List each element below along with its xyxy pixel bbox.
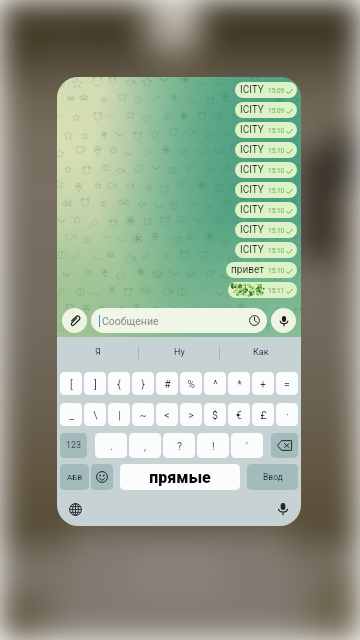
staticText: 15:10: [268, 247, 285, 255]
button[interactable]: Ввод: [247, 464, 298, 490]
staticText: [: [70, 378, 73, 390]
button[interactable]: ·: [276, 403, 298, 426]
staticText: \: [93, 409, 98, 421]
button[interactable]: ICITY: [235, 202, 297, 218]
staticText: привет: [231, 264, 264, 276]
button[interactable]: Change language: [57, 492, 93, 526]
staticText: ICITY: [240, 224, 264, 236]
button[interactable]: АБВ: [60, 464, 89, 490]
staticText: |: [118, 409, 121, 421]
button[interactable]: привет: [226, 262, 297, 278]
staticText: ICITY: [240, 204, 264, 216]
staticText: прямые: [150, 467, 212, 486]
staticText: ,: [144, 440, 147, 452]
staticText: ^: [213, 378, 218, 390]
staticText: =: [284, 378, 290, 390]
other: Backspace: [270, 433, 299, 458]
button[interactable]: ICITY: [235, 122, 297, 138]
other: Emoji: [90, 464, 114, 490]
staticText: ~: [139, 409, 147, 421]
staticText: прямые: [149, 467, 211, 486]
staticText: ICITY: [240, 164, 264, 176]
staticText: %: [187, 378, 195, 390]
button[interactable]: Как: [220, 337, 301, 368]
button[interactable]: 123: [60, 433, 87, 458]
staticText: 15:09: [268, 87, 285, 95]
staticText: ]: [94, 378, 97, 390]
staticText: $: [212, 409, 218, 421]
button[interactable]: >: [180, 403, 202, 426]
button[interactable]: Voice message: [271, 308, 296, 333]
button[interactable]: \: [84, 403, 106, 426]
button[interactable]: !: [197, 433, 229, 458]
staticText: прямые: [150, 468, 212, 487]
button[interactable]: [91, 464, 113, 490]
staticText: .: [110, 440, 113, 452]
staticText: ICITY: [240, 84, 264, 96]
staticText: Как: [253, 347, 269, 358]
button[interactable]: [: [60, 372, 82, 395]
button[interactable]: ?: [163, 433, 195, 458]
staticText: 15:10: [268, 127, 285, 135]
button[interactable]: .: [95, 433, 127, 458]
button[interactable]: €: [228, 403, 250, 426]
button[interactable]: <: [156, 403, 178, 426]
staticText: _: [69, 409, 74, 421]
staticText: Я: [95, 347, 101, 358]
staticText: 15:10: [268, 267, 285, 275]
button[interactable]: ICITY: [235, 242, 297, 258]
button[interactable]: ICITY: [235, 142, 297, 158]
button[interactable]: ICITY: [235, 222, 297, 238]
button[interactable]: ICITY: [235, 82, 297, 98]
staticText: £: [260, 409, 267, 421]
staticText: ICITY: [240, 144, 264, 156]
button[interactable]: _: [60, 403, 82, 426]
button[interactable]: Ну: [139, 337, 220, 368]
button[interactable]: ~: [132, 403, 154, 426]
staticText: *: [237, 378, 242, 390]
button[interactable]: ': [231, 433, 263, 458]
button[interactable]: [120, 464, 240, 490]
staticText: 15:09: [268, 107, 285, 115]
button[interactable]: ]: [84, 372, 106, 395]
button[interactable]: Attach: [62, 308, 87, 333]
staticText: 15:10: [268, 147, 285, 155]
staticText: прямые: [149, 469, 211, 488]
staticText: 15:10: [268, 167, 285, 175]
staticText: ': [246, 440, 248, 452]
staticText: }: [141, 378, 145, 390]
staticText: Ввод: [263, 472, 283, 482]
button[interactable]: +: [252, 372, 274, 395]
button[interactable]: ,: [129, 433, 161, 458]
button[interactable]: [271, 433, 298, 458]
button[interactable]: ICITY: [235, 162, 297, 178]
button[interactable]: |: [108, 403, 130, 426]
button[interactable]: }: [132, 372, 154, 395]
staticText: ICITY: [240, 104, 264, 116]
button[interactable]: *: [228, 372, 250, 395]
staticText: 15:10: [268, 187, 285, 195]
staticText: 15:11: [268, 287, 285, 295]
staticText: прямые: [150, 469, 212, 488]
button[interactable]: 15:11: [228, 282, 297, 298]
button[interactable]: $: [204, 403, 226, 426]
button[interactable]: ^: [204, 372, 226, 395]
staticText: 123: [66, 440, 82, 451]
button[interactable]: Я: [57, 337, 139, 368]
button[interactable]: %: [180, 372, 202, 395]
button[interactable]: £: [252, 403, 274, 426]
staticText: >: [188, 409, 194, 421]
staticText: #: [164, 378, 171, 390]
button[interactable]: {: [108, 372, 130, 395]
staticText: +: [260, 378, 266, 390]
button[interactable]: Сообщение: [91, 308, 267, 333]
button[interactable]: =: [276, 372, 298, 395]
staticText: ICITY: [240, 244, 264, 256]
staticText: €: [236, 409, 242, 421]
button[interactable]: ICITY: [235, 182, 297, 198]
button[interactable]: Voice input: [265, 492, 301, 526]
button[interactable]: #: [156, 372, 178, 395]
staticText: АБВ: [67, 473, 83, 482]
staticText: Сообщение: [102, 315, 159, 327]
button[interactable]: ICITY: [235, 102, 297, 118]
